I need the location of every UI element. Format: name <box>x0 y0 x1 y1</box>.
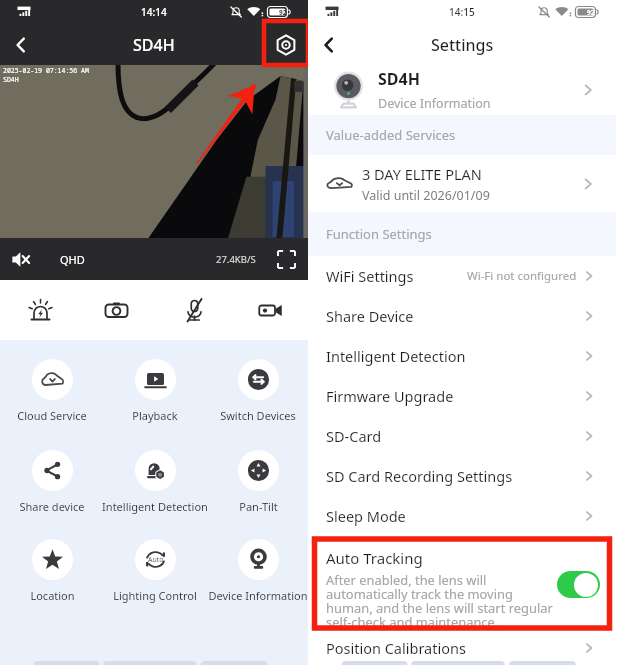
staticText: 92 <box>587 8 595 17</box>
staticText: Cloud Service <box>17 408 87 423</box>
staticText: SD4H <box>378 68 420 90</box>
button[interactable]: Sleep Mode <box>308 496 616 536</box>
staticText: Value-added Services <box>326 126 456 144</box>
staticText: Auto Tracking <box>326 548 423 568</box>
staticText: Firmware Upgrade <box>326 386 454 406</box>
button[interactable]: Intelligent Detection <box>308 336 616 376</box>
button[interactable]: Device Information <box>188 539 328 601</box>
button[interactable]: Share device <box>0 450 122 512</box>
button[interactable]: Snapshot <box>93 287 139 333</box>
button[interactable]: Pan-Tilt <box>188 450 328 512</box>
staticText: Intelligent Detection <box>102 499 208 514</box>
button[interactable]: Back <box>308 24 350 65</box>
staticText: Location <box>30 588 75 603</box>
staticText: 14:14 <box>141 5 167 19</box>
staticText: Sleep Mode <box>326 506 406 526</box>
staticText: Pan-Tilt <box>239 499 278 514</box>
staticText: Valid until 2026/01/09 <box>362 187 490 204</box>
staticText: Function Settings <box>326 225 432 243</box>
button[interactable]: Playback <box>85 359 225 421</box>
staticText: Device Information <box>378 95 491 112</box>
button[interactable]: Settings <box>266 25 306 65</box>
button[interactable]: Firmware Upgrade <box>308 376 616 416</box>
staticText: WiFi Settings <box>326 266 414 286</box>
button[interactable]: Position Calibrations <box>308 631 616 665</box>
button[interactable]: Auto Tracking toggle <box>557 571 600 598</box>
staticText: SD4H <box>3 75 19 84</box>
staticText: 3 DAY ELITE PLAN <box>362 164 482 184</box>
button[interactable]: Back <box>0 24 42 65</box>
staticText: Wi-Fi not configured <box>467 268 577 284</box>
button[interactable]: Auto Tracking <box>308 536 616 631</box>
button[interactable]: Record <box>247 287 293 333</box>
button[interactable]: Intelligent Detection <box>85 450 225 512</box>
button[interactable]: Mute <box>5 243 37 275</box>
staticText: Intelligent Detection <box>326 346 466 366</box>
staticText: 92 <box>279 8 287 17</box>
staticText: 27.4KB/S <box>216 253 256 266</box>
staticText: Position Calibrations <box>326 638 466 658</box>
staticText: Device Information <box>208 588 308 603</box>
button[interactable]: Mute microphone <box>171 287 217 333</box>
button[interactable]: QHD <box>60 252 85 267</box>
staticText: Share device <box>19 499 85 514</box>
staticText: Switch Devices <box>220 408 296 423</box>
button[interactable]: SD4H <box>308 65 616 115</box>
button[interactable]: SD Card Recording Settings <box>308 456 616 496</box>
button[interactable]: Cloud Service <box>0 359 122 421</box>
staticText: SD-Card <box>326 426 382 446</box>
staticText: Playback <box>132 408 178 423</box>
staticText: Lighting Control <box>113 588 197 603</box>
staticText: Share Device <box>326 306 414 326</box>
button[interactable]: Fullscreen <box>274 247 298 271</box>
button[interactable]: Share Device <box>308 296 616 336</box>
button[interactable]: Auto <box>85 539 225 601</box>
button[interactable]: Switch Devices <box>188 359 328 421</box>
staticText: SD4H <box>133 34 175 56</box>
button[interactable]: Siren <box>17 287 63 333</box>
button[interactable]: SD-Card <box>308 416 616 456</box>
button[interactable]: WiFi Settings <box>308 256 616 296</box>
staticText: SD Card Recording Settings <box>326 466 513 486</box>
staticText: Settings <box>431 34 494 56</box>
staticText: 14:15 <box>449 5 475 19</box>
staticText: 2025-02-19 07:14:56 AM <box>3 66 89 75</box>
staticText: Auto <box>148 555 164 565</box>
staticText: After enabled, the lens will automatical… <box>326 571 553 630</box>
button[interactable]: 3 DAY ELITE PLAN <box>308 155 616 212</box>
button[interactable]: Location <box>0 539 122 601</box>
